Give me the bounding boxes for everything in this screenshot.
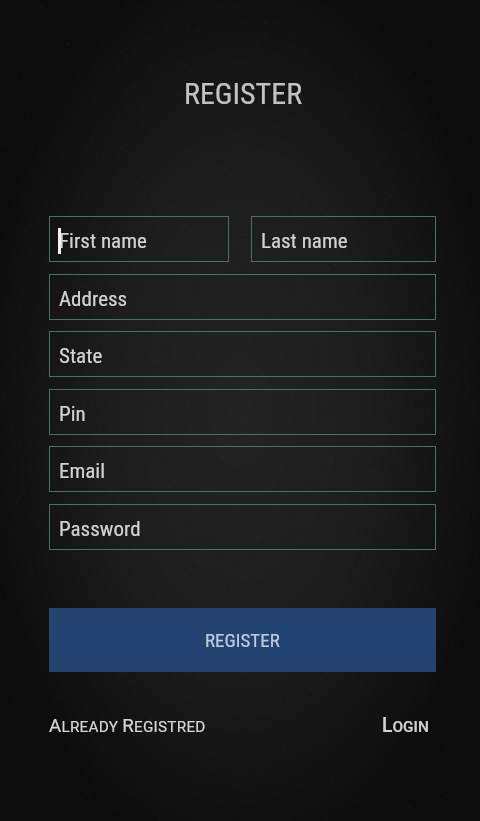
- button[interactable]: Last name: [251, 216, 436, 262]
- button[interactable]: Pin: [49, 389, 436, 435]
- button[interactable]: State: [49, 331, 436, 377]
- staticText: REGISTER: [184, 76, 303, 111]
- staticText: Last name: [261, 229, 348, 254]
- button[interactable]: Password: [49, 504, 436, 550]
- staticText: Pin: [59, 402, 86, 427]
- staticText: Address: [59, 287, 128, 312]
- staticText: Password: [59, 517, 141, 542]
- staticText: First name: [59, 229, 147, 254]
- button[interactable]: ALREADY REGISTRED: [49, 715, 206, 737]
- staticText: LOGIN: [382, 714, 429, 737]
- staticText: ALREADY REGISTRED: [49, 715, 206, 737]
- button[interactable]: Address: [49, 274, 436, 320]
- button[interactable]: Email: [49, 446, 436, 492]
- button[interactable]: First name: [49, 216, 229, 262]
- button[interactable]: LOGIN: [382, 714, 429, 737]
- button[interactable]: REGISTER: [49, 608, 436, 672]
- staticText: REGISTER: [205, 629, 280, 651]
- staticText: Email: [59, 459, 105, 484]
- staticText: State: [59, 344, 103, 369]
